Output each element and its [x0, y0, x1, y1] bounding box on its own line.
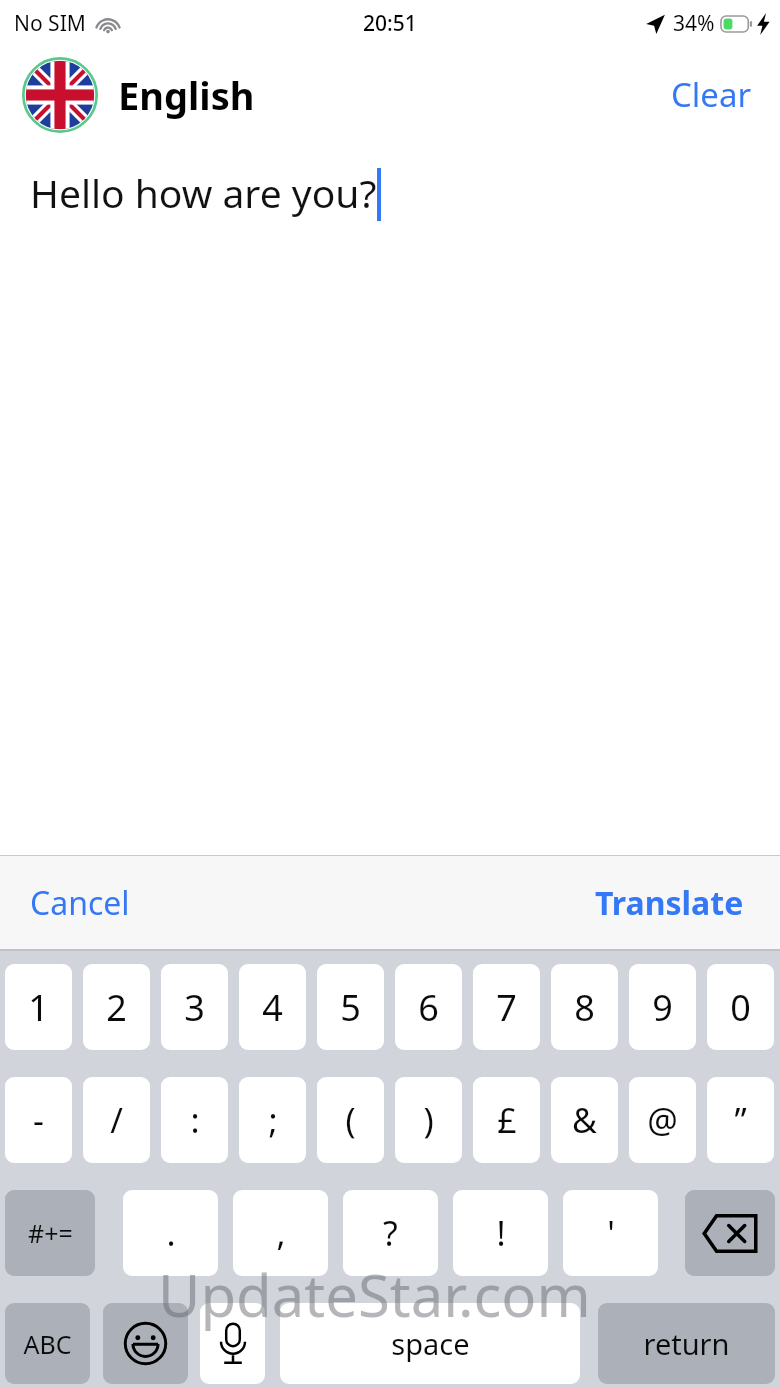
- staticText: ”: [734, 1097, 747, 1143]
- staticText: Clear: [671, 72, 752, 117]
- button[interactable]: Cancel: [22, 873, 138, 933]
- button[interactable]: ,: [233, 1190, 328, 1276]
- staticText: ,: [276, 1210, 286, 1256]
- staticText: 34%: [673, 9, 715, 38]
- button[interactable]: Translate: [587, 873, 752, 933]
- button[interactable]: ”: [707, 1077, 774, 1163]
- button[interactable]: ): [395, 1077, 462, 1163]
- staticText: Translate: [595, 881, 744, 925]
- button[interactable]: !: [453, 1190, 548, 1276]
- button[interactable]: 2: [83, 964, 150, 1050]
- staticText: Cancel: [30, 881, 130, 925]
- button[interactable]: (: [317, 1077, 384, 1163]
- staticText: /: [110, 1097, 123, 1143]
- button[interactable]: #+=: [5, 1190, 95, 1276]
- button[interactable]: @: [629, 1077, 696, 1163]
- button[interactable]: Emoji: [103, 1303, 188, 1384]
- button[interactable]: 8: [551, 964, 618, 1050]
- button[interactable]: 9: [629, 964, 696, 1050]
- button[interactable]: Backspace: [685, 1190, 775, 1276]
- button[interactable]: &: [551, 1077, 618, 1163]
- staticText: UpdateStar.com: [158, 1255, 591, 1334]
- button[interactable]: ;: [239, 1077, 306, 1163]
- staticText: ?: [383, 1210, 398, 1256]
- button[interactable]: 7: [473, 964, 540, 1050]
- button[interactable]: /: [83, 1077, 150, 1163]
- staticText: 3: [184, 983, 205, 1032]
- button[interactable]: English: [22, 57, 255, 133]
- staticText: (: [345, 1097, 356, 1143]
- staticText: #+=: [28, 1216, 73, 1250]
- staticText: @: [647, 1097, 678, 1143]
- staticText: ': [607, 1210, 615, 1256]
- button[interactable]: 5: [317, 964, 384, 1050]
- button[interactable]: ': [563, 1190, 658, 1276]
- button[interactable]: Clear: [663, 66, 760, 123]
- button[interactable]: Dictation: [200, 1303, 265, 1384]
- staticText: 6: [418, 983, 439, 1032]
- staticText: 20:51: [363, 9, 417, 38]
- staticText: No SIM: [14, 9, 86, 38]
- button[interactable]: ?: [343, 1190, 438, 1276]
- button[interactable]: :: [161, 1077, 228, 1163]
- staticText: 9: [652, 983, 673, 1032]
- staticText: :: [190, 1097, 200, 1143]
- staticText: ABC: [23, 1327, 72, 1361]
- button[interactable]: 1: [5, 964, 72, 1050]
- button[interactable]: 3: [161, 964, 228, 1050]
- staticText: -: [33, 1097, 44, 1143]
- button[interactable]: £: [473, 1077, 540, 1163]
- button[interactable]: ABC: [5, 1303, 90, 1384]
- staticText: ): [423, 1097, 434, 1143]
- staticText: 8: [574, 983, 595, 1032]
- button[interactable]: 4: [239, 964, 306, 1050]
- button[interactable]: 6: [395, 964, 462, 1050]
- button[interactable]: return: [598, 1303, 775, 1384]
- staticText: 2: [106, 983, 127, 1032]
- staticText: &: [572, 1097, 597, 1143]
- staticText: space: [391, 1324, 470, 1363]
- staticText: 7: [496, 983, 517, 1032]
- staticText: return: [643, 1324, 730, 1363]
- staticText: 1: [28, 983, 49, 1032]
- staticText: ;: [268, 1097, 278, 1143]
- button[interactable]: -: [5, 1077, 72, 1163]
- button[interactable]: space: [280, 1303, 580, 1384]
- staticText: !: [496, 1210, 506, 1256]
- staticText: Hello how are you?: [30, 166, 377, 219]
- staticText: £: [497, 1097, 517, 1143]
- button[interactable]: .: [123, 1190, 218, 1276]
- staticText: 0: [730, 983, 751, 1032]
- staticText: English: [118, 69, 255, 121]
- staticText: 5: [340, 983, 361, 1032]
- staticText: .: [166, 1210, 176, 1256]
- button[interactable]: 0: [707, 964, 774, 1050]
- button[interactable]: Hello how are you?: [0, 142, 780, 855]
- staticText: 4: [262, 983, 283, 1032]
